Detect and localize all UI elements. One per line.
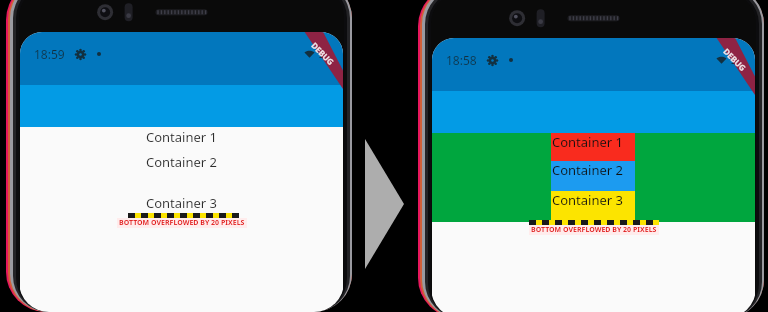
other: Signal <box>318 49 329 60</box>
other: Wi-Fi <box>304 49 315 60</box>
button[interactable]: Container 1 <box>551 133 635 161</box>
other: Settings <box>75 49 86 60</box>
button[interactable]: Container 1 <box>20 127 343 147</box>
staticText: DEBUG <box>721 46 749 73</box>
staticText: 18:58 <box>446 52 477 68</box>
button[interactable]: Container 2 <box>20 152 343 172</box>
staticText: Container 1 <box>146 128 218 146</box>
staticText: Container 2 <box>146 153 218 171</box>
button[interactable]: Container 2 <box>551 161 635 191</box>
other: Signal <box>730 55 741 66</box>
staticText: Container 3 <box>552 191 624 209</box>
staticText: BOTTOM OVERFLOWED BY 20 PIXELS <box>119 218 245 228</box>
staticText: DEBUG <box>309 40 337 67</box>
other: Settings <box>487 55 498 66</box>
staticText: BOTTOM OVERFLOWED BY 20 PIXELS <box>531 225 657 235</box>
other: Wi-Fi <box>716 55 727 66</box>
button[interactable]: Container 3 <box>551 191 635 229</box>
button[interactable]: Container 3 <box>20 193 343 213</box>
staticText: Container 3 <box>146 194 218 212</box>
staticText: 18:59 <box>34 46 65 62</box>
staticText: Container 2 <box>552 161 624 179</box>
staticText: Container 1 <box>552 133 624 151</box>
